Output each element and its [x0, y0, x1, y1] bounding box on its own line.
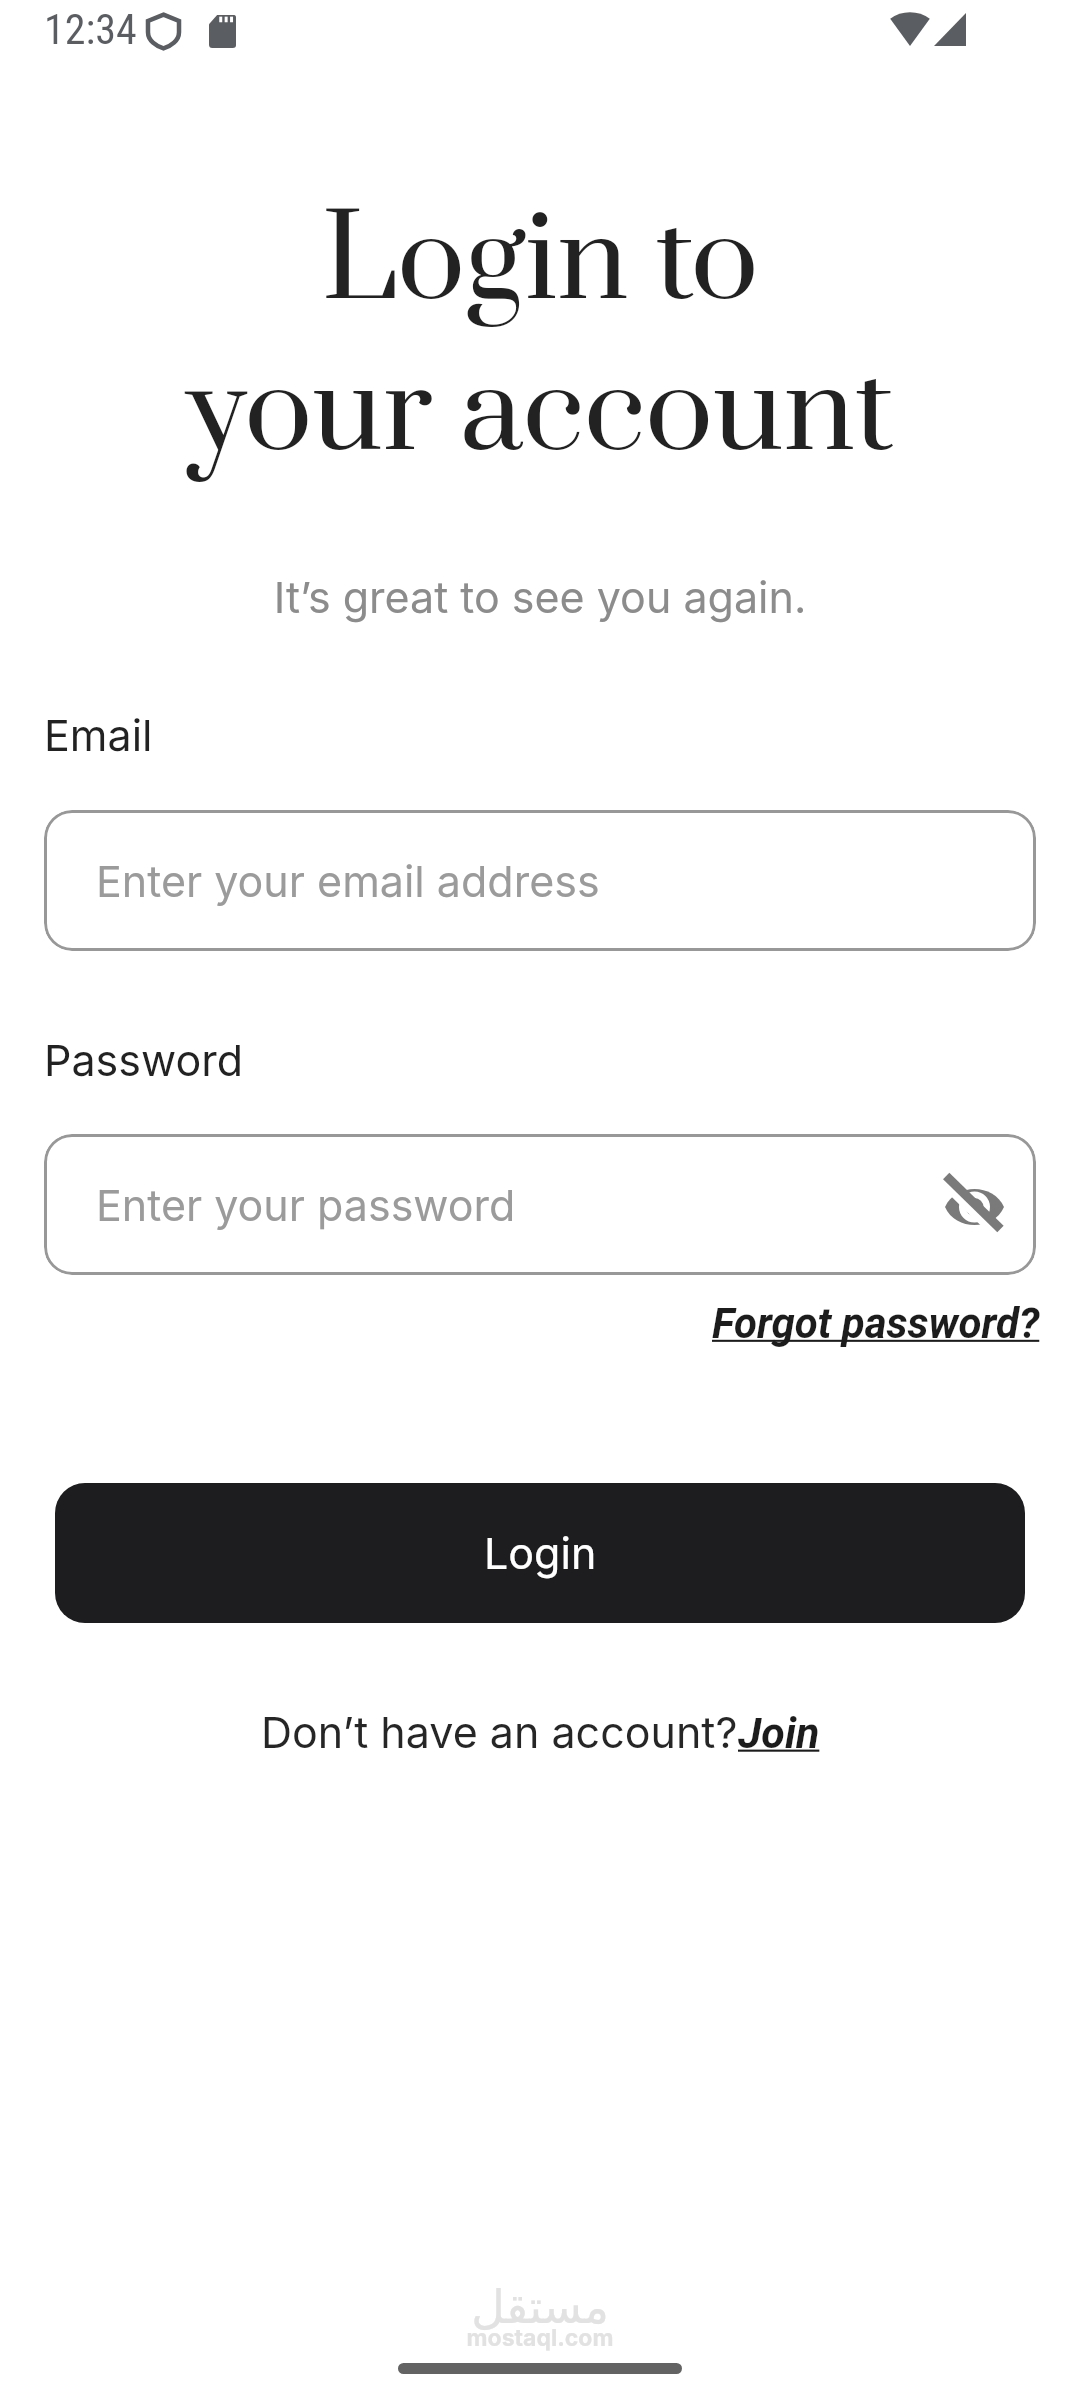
- staticText: Login to: [0, 187, 1080, 339]
- staticText: It’s great to see you again.: [0, 571, 1080, 623]
- button[interactable]: [945, 1182, 1004, 1232]
- staticText: mostaql.com: [0, 2324, 1080, 2352]
- staticText: Enter your password: [96, 1179, 516, 1231]
- staticText: 12:34: [44, 5, 137, 54]
- button[interactable]: Enter your email address: [44, 810, 1036, 951]
- staticText: Email: [44, 709, 153, 761]
- button[interactable]: Join: [738, 1708, 820, 1758]
- button[interactable]: Login: [55, 1483, 1025, 1623]
- staticText: Login: [484, 1527, 597, 1579]
- staticText: Don’t have an account?: [261, 1706, 738, 1758]
- button[interactable]: Enter your password: [44, 1134, 1036, 1275]
- staticText: Password: [44, 1034, 244, 1086]
- button[interactable]: Forgot password?: [712, 1299, 1040, 1348]
- staticText: your account: [0, 338, 1080, 490]
- staticText: Enter your email address: [96, 855, 600, 907]
- staticText: مستقل: [0, 2280, 1080, 2334]
